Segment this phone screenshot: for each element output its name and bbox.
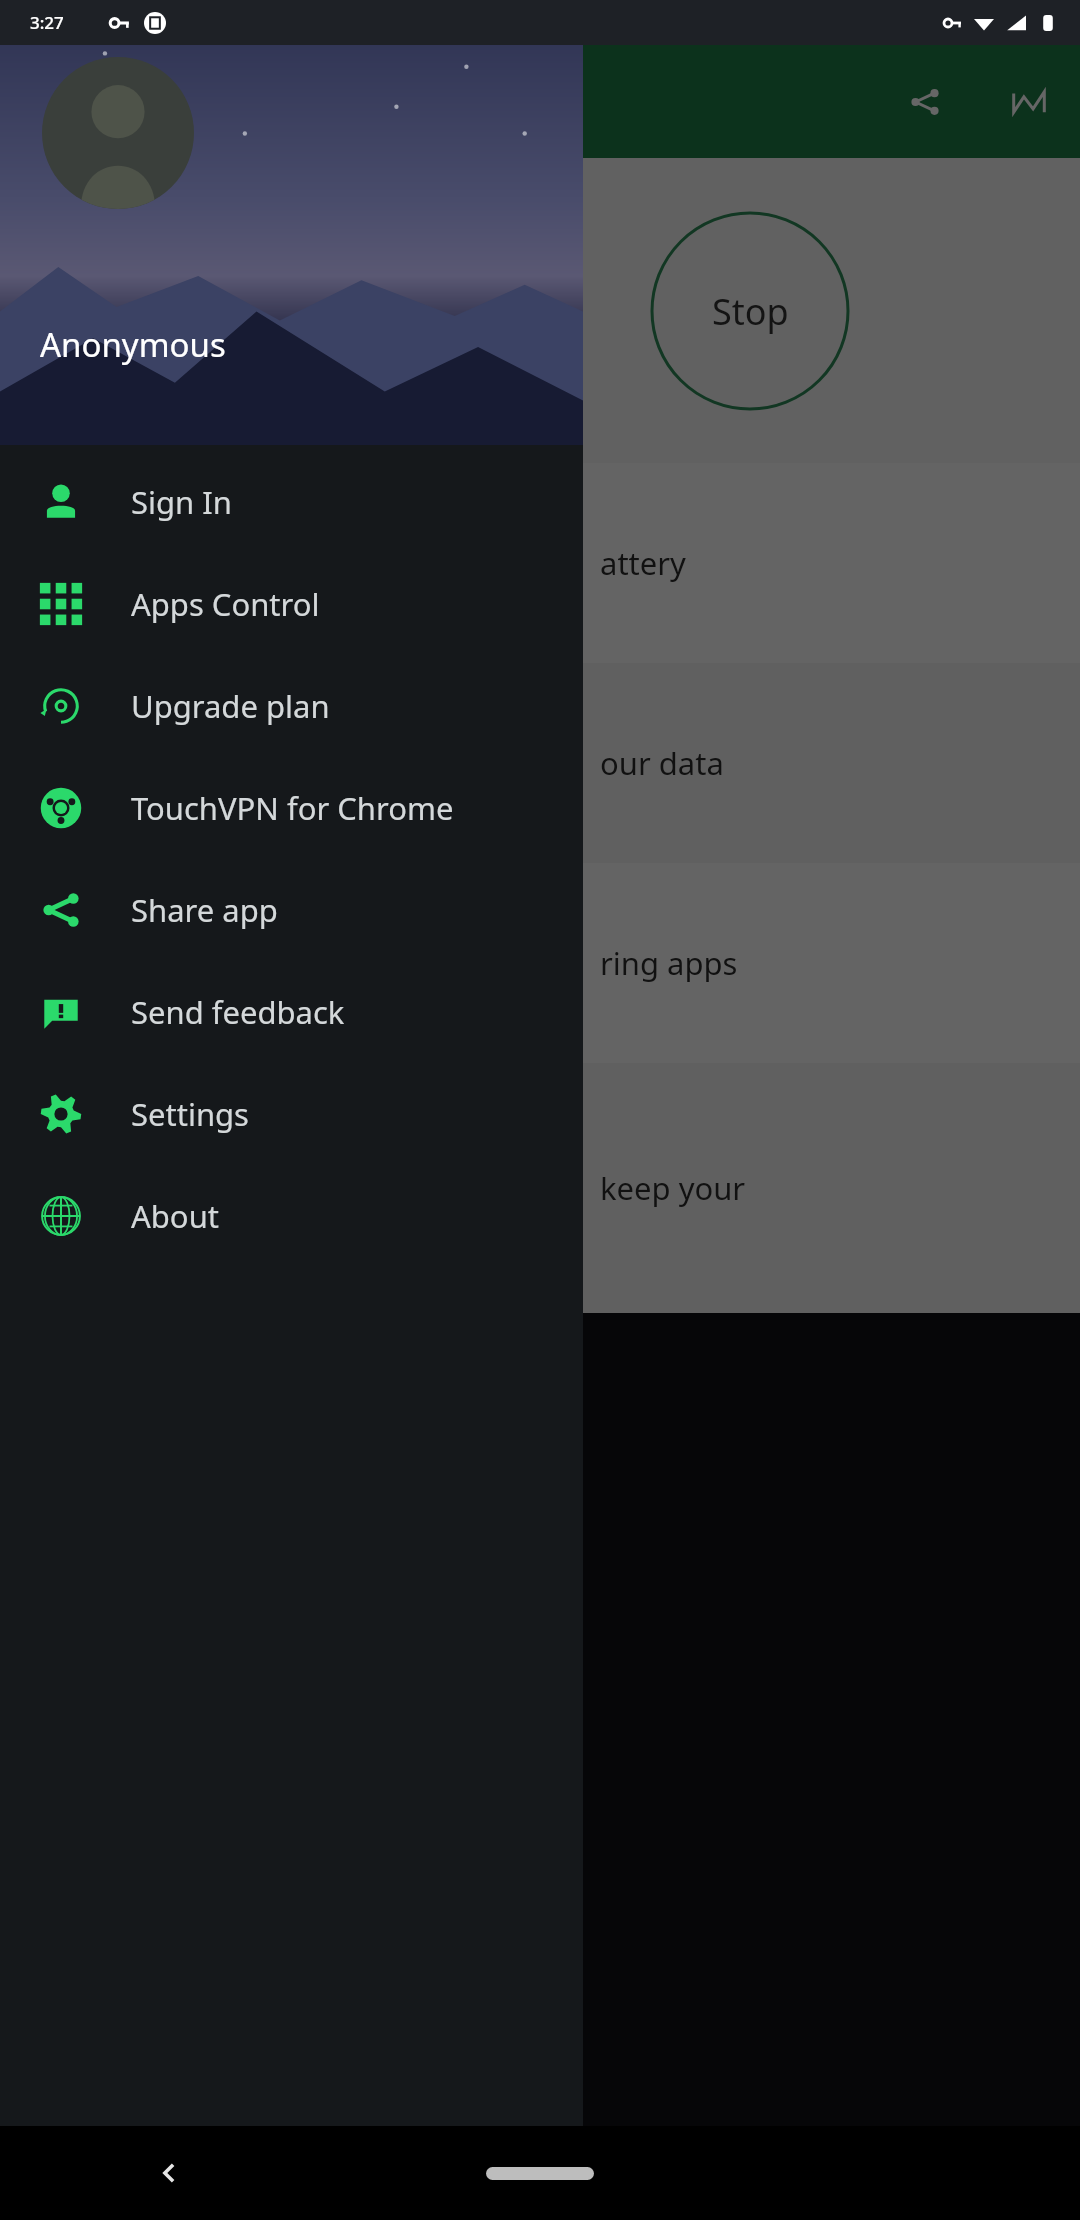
staticText: Settings [131, 1093, 249, 1135]
staticText: keep your [600, 1167, 746, 1209]
button[interactable]: Settings [0, 1063, 583, 1165]
button[interactable]: ring apps [0, 863, 1080, 1063]
button[interactable]: our data [0, 663, 1080, 863]
button[interactable]: Share app [0, 859, 583, 961]
staticText: Sign In [131, 481, 232, 523]
staticText: 3:27 [30, 11, 64, 34]
button[interactable]: Apps Control [0, 553, 583, 655]
button[interactable]: Back [140, 2143, 200, 2203]
staticText: TouchVPN for Chrome [131, 787, 454, 829]
staticText: Apps Control [131, 583, 320, 625]
staticText: ring apps [600, 942, 738, 984]
button[interactable]: Send feedback [0, 961, 583, 1063]
staticText: attery [600, 542, 686, 584]
staticText: About [131, 1195, 219, 1237]
staticText: Share app [131, 889, 278, 931]
button[interactable]: TouchVPN for Chrome [0, 757, 583, 859]
button[interactable]: About [0, 1165, 583, 1267]
button[interactable]: Upgrade plan [0, 655, 583, 757]
button[interactable]: keep your [0, 1063, 1080, 1313]
button[interactable]: Sign In [0, 451, 583, 553]
button[interactable]: Stats [1002, 75, 1056, 129]
staticText: Upgrade plan [131, 685, 330, 727]
button[interactable]: Share [898, 75, 952, 129]
staticText: Send feedback [131, 991, 345, 1033]
staticText: Stop [712, 287, 789, 336]
button[interactable]: Home [486, 2167, 594, 2180]
staticText: Anonymous [40, 322, 226, 367]
staticText: our data [600, 742, 724, 784]
button[interactable]: attery [0, 463, 1080, 663]
button[interactable]: Profile photo [42, 57, 194, 209]
